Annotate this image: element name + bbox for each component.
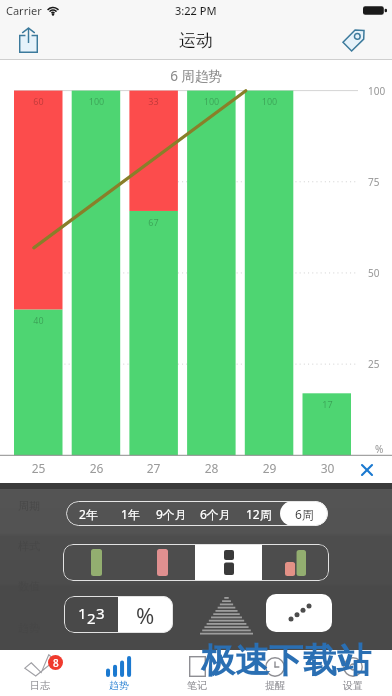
staticText: 27	[129, 460, 178, 476]
staticText: 1	[78, 603, 87, 623]
staticText: 3:22 PM	[175, 3, 217, 18]
button[interactable]: Distribution	[200, 597, 253, 636]
staticText: 30	[303, 460, 352, 476]
button[interactable]: 笔记	[158, 650, 236, 696]
staticText: 60	[14, 95, 63, 107]
button[interactable]: Bar style 4	[262, 544, 329, 581]
staticText: 40	[14, 314, 63, 326]
staticText: 极速下载站	[201, 639, 371, 682]
staticText: 日志	[30, 679, 50, 692]
button[interactable]: 趋势	[79, 650, 158, 696]
staticText: Carrier	[6, 3, 42, 18]
button[interactable]: 提醒	[236, 650, 314, 696]
button[interactable]: 6周	[280, 501, 328, 526]
staticText: 12周	[246, 506, 272, 522]
button[interactable]: 2年	[66, 501, 111, 526]
staticText: 设置	[343, 679, 363, 692]
button[interactable]: 日志	[0, 650, 79, 696]
button[interactable]: 9个月	[150, 501, 193, 526]
button[interactable]: Share	[14, 26, 42, 54]
staticText: 28	[187, 460, 236, 476]
staticText: 6 周趋势	[0, 67, 392, 85]
button[interactable]: 设置	[314, 650, 392, 696]
staticText: 33	[129, 95, 178, 107]
staticText: 100	[368, 84, 386, 98]
staticText: %	[136, 600, 155, 630]
staticText: 100	[72, 95, 121, 107]
staticText: 6个月	[200, 506, 231, 522]
button[interactable]: Bar style 3	[195, 544, 262, 581]
staticText: 67	[129, 216, 178, 228]
staticText: %	[375, 442, 384, 456]
staticText: 17	[303, 398, 352, 410]
button[interactable]: Bar style 2	[129, 544, 195, 581]
staticText: 2	[87, 608, 96, 628]
button[interactable]: Close	[355, 458, 379, 482]
staticText: 26	[72, 460, 121, 476]
button[interactable]: 1年	[111, 501, 150, 526]
button[interactable]: Bar style 1	[63, 544, 129, 581]
staticText: 笔记	[187, 679, 207, 692]
staticText: 1年	[121, 506, 140, 522]
staticText: 8	[53, 656, 59, 670]
staticText: 25	[14, 460, 63, 476]
button[interactable]: 6个月	[193, 501, 238, 526]
staticText: 运动	[179, 30, 213, 51]
staticText: 100	[187, 95, 236, 107]
staticText: 9个月	[156, 506, 187, 522]
staticText: 25	[368, 357, 380, 371]
button[interactable]: Tags	[339, 26, 367, 54]
staticText: 周期	[18, 499, 40, 513]
staticText: 75	[368, 175, 380, 189]
button[interactable]: 1	[64, 596, 118, 633]
staticText: 50	[368, 266, 380, 280]
staticText: 100	[245, 95, 294, 107]
button[interactable]: Trend line	[266, 594, 332, 632]
staticText: 提醒	[265, 679, 285, 692]
button[interactable]: %	[118, 596, 173, 633]
staticText: 6周	[295, 506, 314, 522]
staticText: 29	[245, 460, 294, 476]
staticText: 2年	[79, 506, 98, 522]
staticText: 3	[96, 603, 105, 623]
button[interactable]: 12周	[238, 501, 280, 526]
staticText: 趋势	[109, 679, 129, 692]
